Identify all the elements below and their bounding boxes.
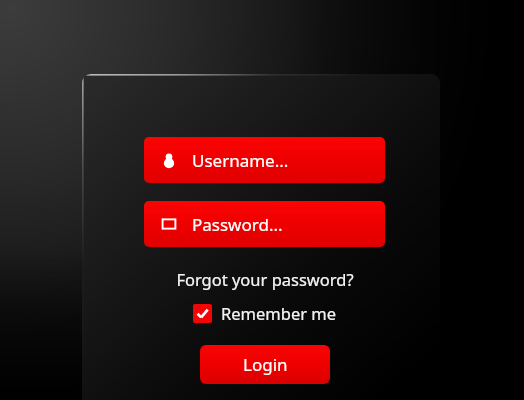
staticText: Username... <box>192 149 289 172</box>
button[interactable]: Login <box>200 345 330 384</box>
button[interactable]: Forgot your password? <box>172 267 358 291</box>
button[interactable]: Password... <box>144 201 385 247</box>
staticText: Password... <box>192 213 283 236</box>
staticText: Login <box>243 353 288 376</box>
staticText: Remember me <box>221 302 337 324</box>
staticText: Forgot your password? <box>176 268 354 290</box>
button[interactable]: Username... <box>144 137 385 183</box>
button[interactable]: Remember me <box>190 300 340 326</box>
